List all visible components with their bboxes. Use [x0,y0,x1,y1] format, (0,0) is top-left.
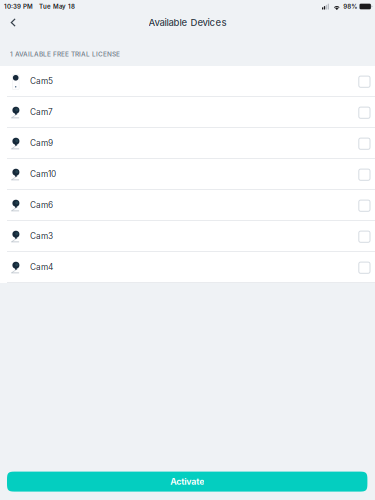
staticText: Activate [170,476,204,487]
staticText: Available Devices [148,17,226,28]
staticText: Cam3 [30,231,53,241]
button[interactable]: Cam9 [0,128,375,159]
button[interactable]: Cam10 [0,159,375,190]
button[interactable]: Cam7 [0,97,375,128]
staticText: Cam5 [30,76,53,86]
button[interactable]: Cam5 [0,66,375,97]
button[interactable]: Cam3 [0,221,375,252]
button[interactable]: Cam4 [0,252,375,283]
staticText: 10:39 PM [4,3,33,10]
staticText: Cam9 [30,138,53,148]
button[interactable]: Cam6 [0,190,375,221]
staticText: Cam7 [30,107,53,117]
staticText: Cam6 [30,200,53,210]
staticText: 98% [343,3,357,10]
staticText: Cam4 [30,262,53,272]
staticText: 1 AVAILABLE FREE TRIAL LICENSE [10,50,120,58]
button[interactable]: Activate [7,472,367,492]
staticText: Tue May 18 [39,3,75,10]
button[interactable]: Back [0,17,26,36]
staticText: Cam10 [30,169,56,179]
